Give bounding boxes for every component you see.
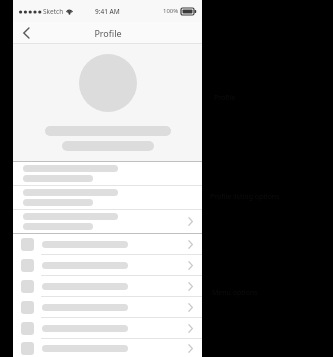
button[interactable]: Menu item xyxy=(13,276,202,296)
staticText: 9:41 AM xyxy=(95,7,120,16)
button[interactable]: Menu item xyxy=(13,318,202,338)
button[interactable]: Menu item xyxy=(13,339,202,357)
button[interactable]: Menu item xyxy=(13,234,202,254)
button[interactable]: Profile list item xyxy=(13,186,202,209)
button[interactable]: Back xyxy=(13,22,39,44)
button[interactable]: Menu item xyxy=(13,297,202,317)
button[interactable]: Profile list item xyxy=(13,162,202,185)
staticText: Sketch xyxy=(43,7,64,16)
staticText: Profile xyxy=(94,27,122,39)
staticText: 100% xyxy=(163,7,179,15)
button[interactable]: Menu item xyxy=(13,255,202,275)
button[interactable]: Profile list item xyxy=(13,210,202,233)
